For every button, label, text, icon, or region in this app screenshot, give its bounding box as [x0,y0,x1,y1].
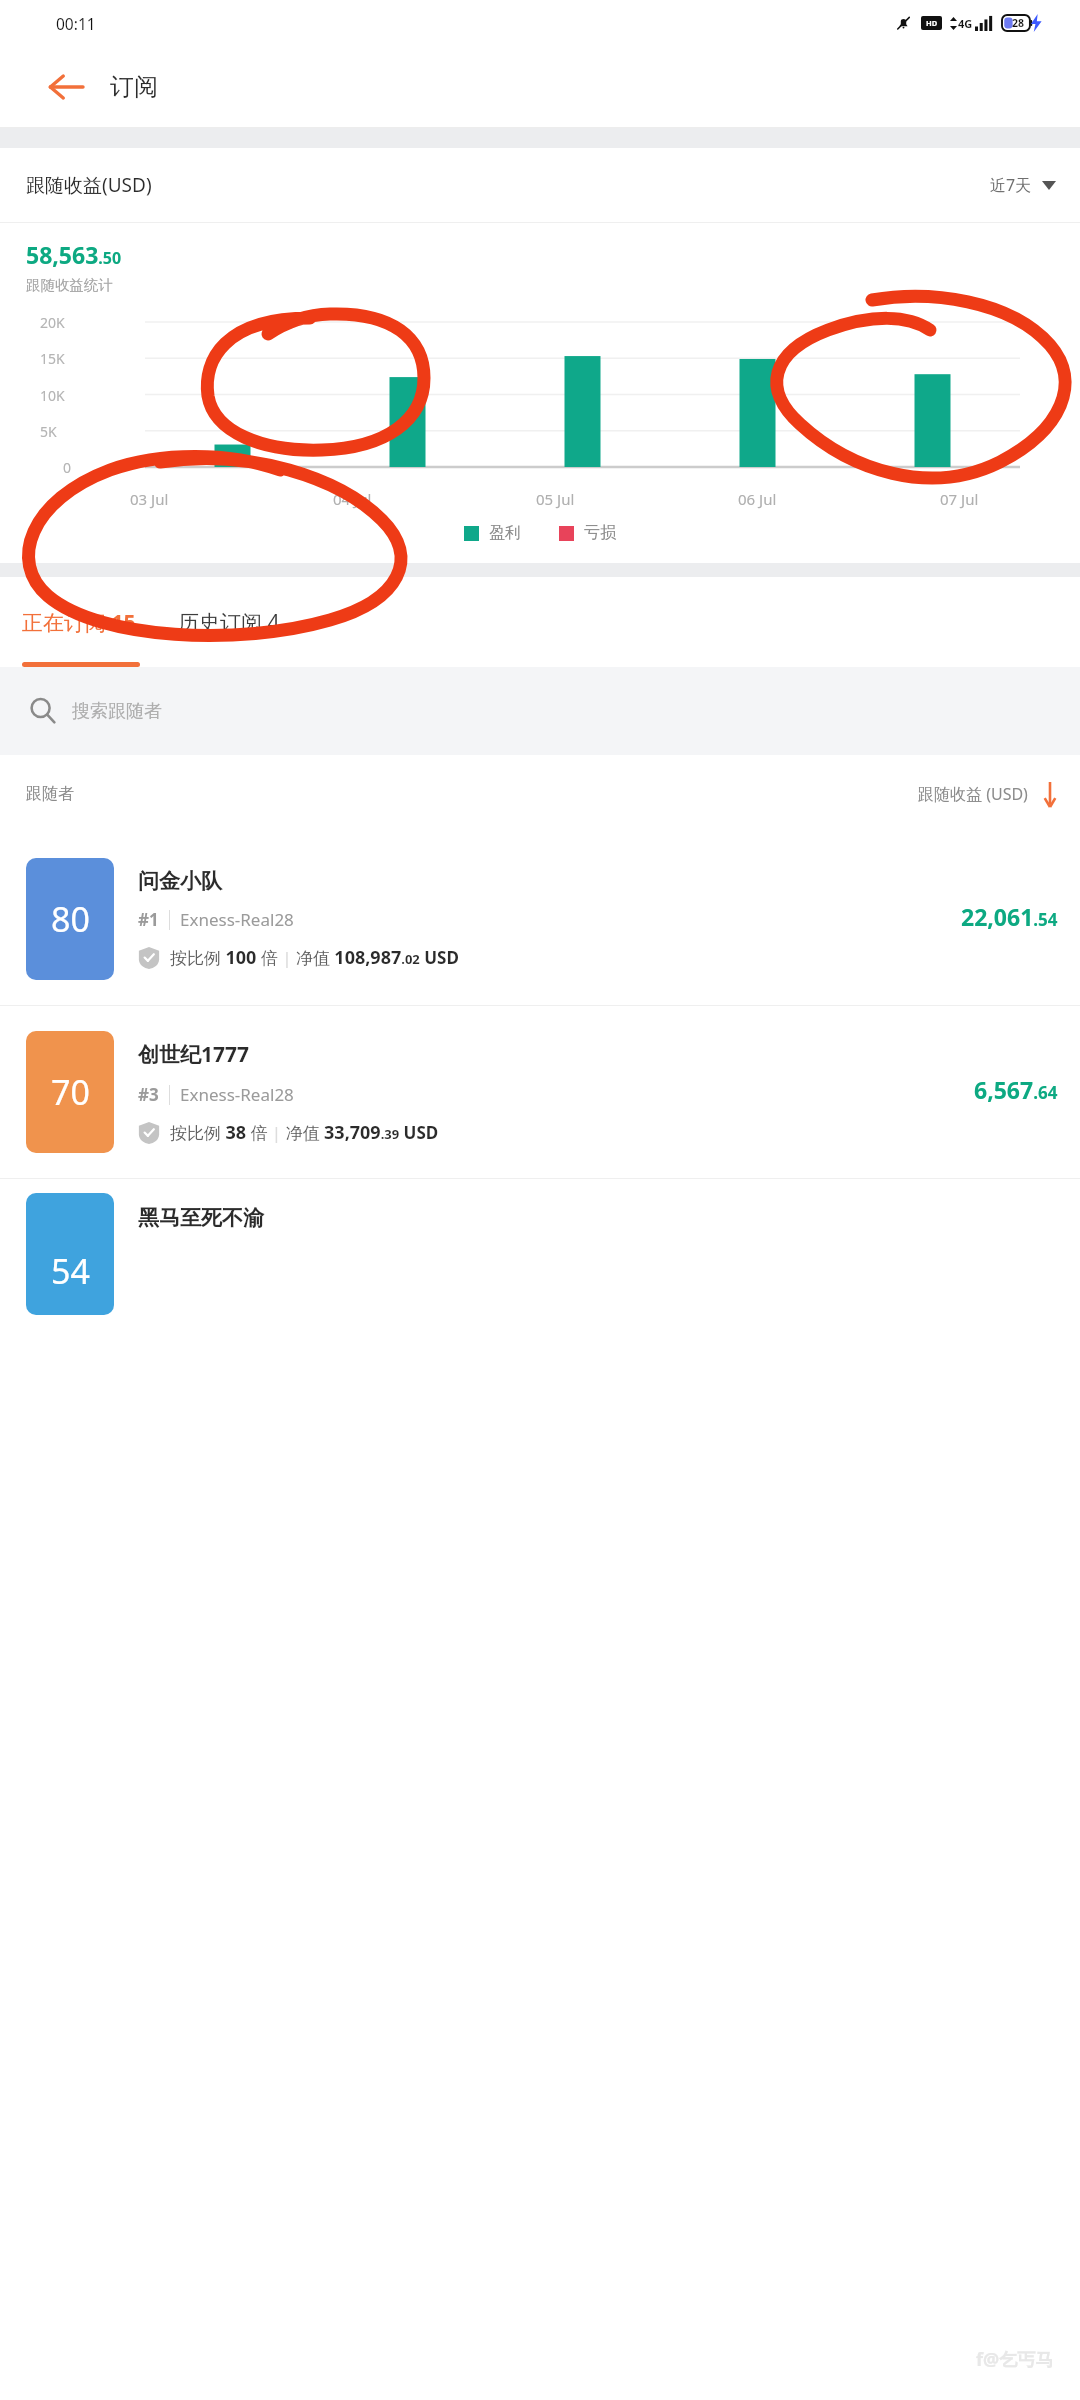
staticText: 正在订阅 15 [22,608,136,637]
staticText: 盈利 [489,523,521,543]
staticText: f@乞丐马 [976,2347,1054,2372]
staticText: 10K [40,386,65,405]
staticText: Exness-Real28 [180,1083,294,1106]
staticText: 亏损 [584,523,616,543]
staticText: 70 [51,1069,90,1115]
staticText: HD [926,18,938,28]
staticText: 搜索跟随者 [72,700,162,723]
staticText: 按比例 100 倍 | 净值 108,987.02 USD [170,945,459,970]
staticText: #3 [138,1083,159,1106]
staticText: 04 Jul [333,489,372,509]
staticText: 跟随收益统计 [26,276,113,294]
staticText: 按比例 38 倍 | 净值 33,709.39 USD [170,1120,439,1145]
staticText: 06 Jul [738,489,777,509]
button[interactable]: 跟随收益 (USD) [918,781,1058,807]
staticText: 28 [1012,16,1025,30]
button[interactable]: 54 [0,1179,1080,2400]
staticText: 80 [51,896,90,942]
staticText: 0 [63,458,72,477]
staticText: Exness-Real28 [180,908,294,931]
staticText: 创世纪1777 [138,1040,250,1069]
staticText: 07 Jul [940,489,979,509]
staticText: 订阅 [110,72,158,102]
staticText: 跟随收益(USD) [26,172,152,198]
staticText: 5K [40,422,57,441]
button[interactable]: 搜索跟随者 [0,667,1080,755]
button[interactable]: 正在订阅 15 [0,600,152,645]
staticText: 22,061.54 [961,901,1058,932]
staticText: 58,563.50 [26,239,122,270]
staticText: 4G [958,16,973,31]
staticText: 54 [51,1248,90,1294]
button[interactable]: Back [38,59,94,115]
staticText: 03 Jul [130,489,169,509]
staticText: 黑马至死不渝 [138,1205,264,1231]
other: Sort descending [1042,781,1058,807]
button[interactable]: 70 [0,1006,1080,1178]
staticText: 近7天 [990,174,1032,196]
staticText: 6,567.64 [974,1074,1058,1105]
staticText: 问金小队 [138,868,222,894]
staticText: 历史订阅 4 [178,608,280,637]
staticText: 15K [40,349,65,368]
staticText: 跟随者 [26,784,74,804]
button[interactable]: 历史订阅 4 [152,600,296,645]
staticText: 00:11 [56,13,96,34]
button[interactable]: 80 [0,833,1080,1005]
staticText: 05 Jul [536,489,575,509]
staticText: #1 [138,908,159,931]
button[interactable]: 近7天 [990,174,1056,196]
staticText: 跟随收益 (USD) [918,783,1028,805]
staticText: 20K [40,313,65,332]
